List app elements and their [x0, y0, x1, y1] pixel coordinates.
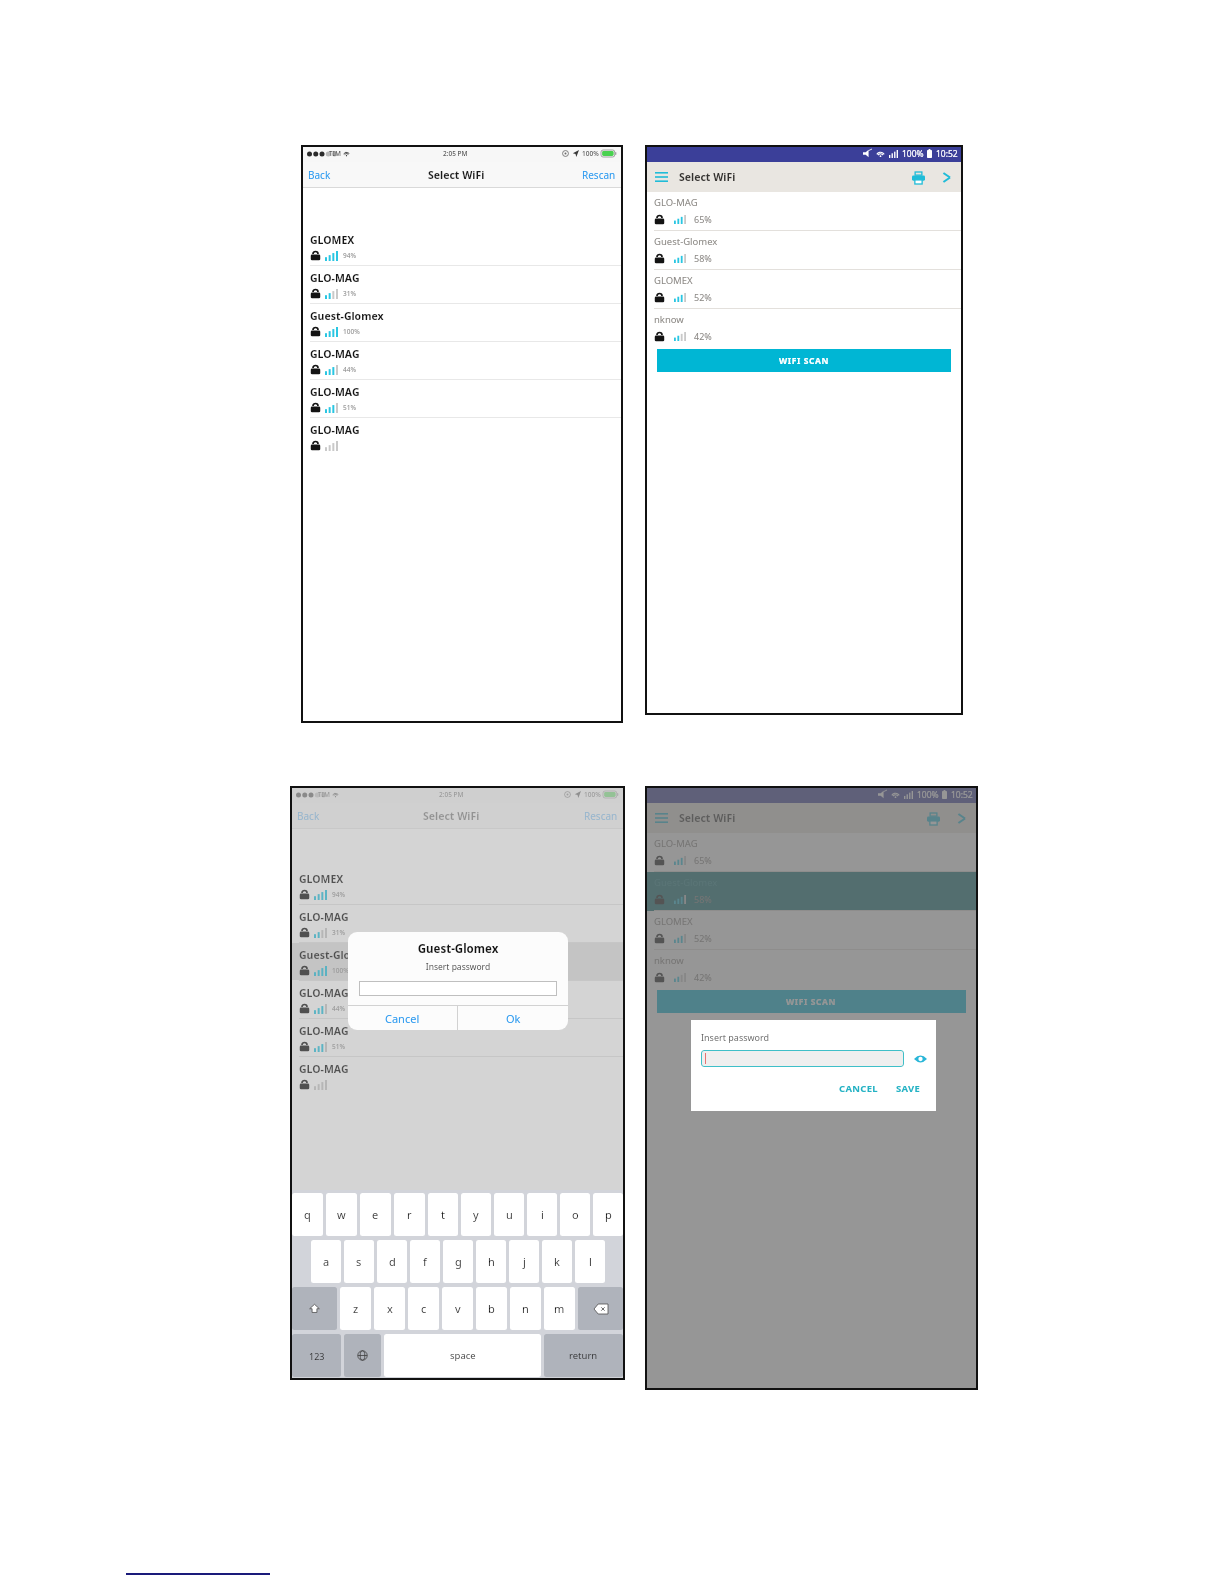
- button[interactable]: u: [494, 1193, 524, 1236]
- staticText: 58%: [694, 893, 712, 905]
- staticText: GLO-MAG: [310, 385, 360, 399]
- staticText: h: [488, 1254, 495, 1269]
- staticText: 51%: [343, 403, 356, 412]
- button[interactable]: WIFI SCAN: [657, 990, 966, 1013]
- button[interactable]: SAVE: [890, 1078, 927, 1099]
- staticText: l: [589, 1254, 592, 1269]
- button[interactable]: Rescan: [584, 809, 618, 823]
- staticText: Select WiFi: [679, 170, 736, 184]
- button[interactable]: 123: [292, 1334, 341, 1377]
- button[interactable]: l: [575, 1240, 605, 1283]
- button[interactable]: GLO-MAG: [290, 1019, 625, 1056]
- staticText: GLO-MAG: [310, 423, 360, 437]
- staticText: u: [506, 1207, 513, 1222]
- button[interactable]: GLOMEX: [645, 911, 978, 950]
- button[interactable]: i: [527, 1193, 557, 1236]
- button[interactable]: d: [377, 1240, 407, 1283]
- staticText: GLO-MAG: [310, 347, 360, 361]
- button[interactable]: h: [476, 1240, 506, 1283]
- button[interactable]: Next: [952, 809, 971, 828]
- button[interactable]: GLO-MAG: [290, 905, 625, 942]
- button[interactable]: GLO-MAG: [301, 380, 623, 417]
- staticText: Select WiFi: [679, 811, 736, 825]
- staticText: n: [522, 1301, 529, 1316]
- button[interactable]: Guest-Glomex: [645, 872, 978, 911]
- staticText: 42%: [694, 971, 712, 983]
- staticText: Rescan: [582, 168, 616, 182]
- button[interactable]: Menu: [652, 809, 670, 827]
- button[interactable]: Ok: [458, 1006, 568, 1030]
- button[interactable]: nknow: [645, 309, 963, 342]
- button[interactable]: GLO-MAG: [290, 981, 625, 1018]
- button[interactable]: g: [443, 1240, 473, 1283]
- staticText: 52%: [694, 932, 712, 944]
- staticText: 31%: [343, 289, 356, 298]
- button[interactable]: w: [326, 1193, 357, 1236]
- button[interactable]: y: [461, 1193, 491, 1236]
- button[interactable]: WIFI SCAN: [657, 349, 951, 372]
- staticText: j: [523, 1254, 526, 1269]
- staticText: m: [554, 1301, 565, 1316]
- button[interactable]: Emoji / language: [344, 1334, 381, 1377]
- button[interactable]: [701, 1050, 904, 1067]
- button[interactable]: Next: [937, 168, 956, 187]
- staticText: Guest-Glomex: [348, 941, 568, 957]
- button[interactable]: Guest-Glomex: [290, 943, 625, 980]
- button[interactable]: Guest-Glomex: [301, 304, 623, 341]
- button[interactable]: o: [560, 1193, 590, 1236]
- button[interactable]: t: [428, 1193, 458, 1236]
- button[interactable]: k: [542, 1240, 572, 1283]
- button[interactable]: return: [544, 1334, 623, 1377]
- staticText: 65%: [694, 854, 712, 866]
- button[interactable]: GLO-MAG: [645, 833, 978, 872]
- button[interactable]: n: [510, 1287, 541, 1330]
- button[interactable]: nknow: [645, 950, 978, 983]
- button[interactable]: GLOMEX: [645, 270, 963, 309]
- staticText: GLO-MAG: [299, 1062, 349, 1076]
- button[interactable]: space: [384, 1334, 541, 1377]
- staticText: GLOMEX: [299, 872, 344, 886]
- button[interactable]: a: [311, 1240, 341, 1283]
- button[interactable]: Rescan: [582, 168, 616, 182]
- button[interactable]: j: [509, 1240, 539, 1283]
- staticText: b: [488, 1301, 495, 1316]
- staticText: Back: [297, 809, 320, 823]
- button[interactable]: GLO-MAG: [290, 1057, 625, 1094]
- button[interactable]: GLO-MAG: [301, 342, 623, 379]
- button[interactable]: p: [593, 1193, 623, 1236]
- button[interactable]: Cancel: [348, 1006, 457, 1030]
- button[interactable]: Backspace: [578, 1287, 623, 1330]
- button[interactable]: Back: [297, 809, 320, 823]
- button[interactable]: Show password: [912, 1051, 928, 1067]
- staticText: i: [541, 1207, 544, 1222]
- button[interactable]: c: [408, 1287, 439, 1330]
- button[interactable]: q: [292, 1193, 323, 1236]
- button[interactable]: e: [360, 1193, 391, 1236]
- button[interactable]: f: [410, 1240, 440, 1283]
- button[interactable]: Shift: [292, 1287, 337, 1330]
- button[interactable]: [359, 981, 557, 996]
- button[interactable]: m: [544, 1287, 575, 1330]
- button[interactable]: z: [340, 1287, 371, 1330]
- button[interactable]: GLOMEX: [301, 228, 623, 265]
- staticText: GLO-MAG: [310, 271, 360, 285]
- button[interactable]: r: [394, 1193, 425, 1236]
- button[interactable]: Guest-Glomex: [645, 231, 963, 270]
- button[interactable]: Back: [308, 168, 331, 182]
- button[interactable]: GLO-MAG: [645, 192, 963, 231]
- button[interactable]: Print: [924, 809, 943, 828]
- button[interactable]: GLOMEX: [290, 867, 625, 904]
- button[interactable]: v: [442, 1287, 473, 1330]
- button[interactable]: CANCEL: [833, 1078, 884, 1099]
- button[interactable]: GLO-MAG: [301, 418, 623, 455]
- button[interactable]: Print: [909, 168, 928, 187]
- button[interactable]: x: [374, 1287, 405, 1330]
- button[interactable]: s: [344, 1240, 374, 1283]
- staticText: 10:52: [951, 789, 973, 801]
- button[interactable]: Menu: [652, 168, 670, 186]
- staticText: s: [356, 1254, 362, 1269]
- button[interactable]: b: [476, 1287, 507, 1330]
- staticText: nknow: [654, 954, 684, 967]
- button[interactable]: GLO-MAG: [301, 266, 623, 303]
